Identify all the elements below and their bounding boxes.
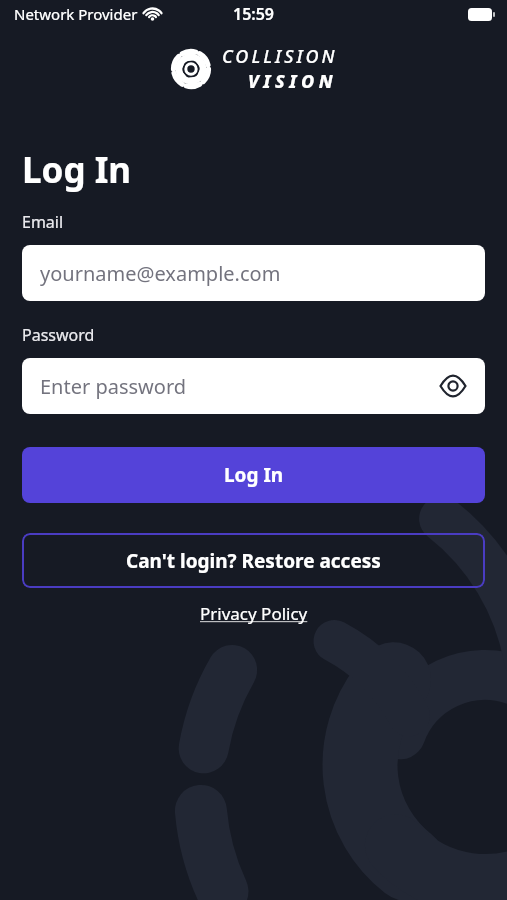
button[interactable]: Can't login? Restore access	[22, 533, 485, 588]
staticText: VISION	[248, 69, 338, 94]
button[interactable]: Privacy Policy	[200, 602, 308, 625]
staticText: yourname@example.com	[40, 260, 281, 287]
staticText: Password	[22, 324, 95, 346]
staticText: Network Provider	[14, 4, 138, 24]
button[interactable]: Log In	[22, 447, 485, 503]
button[interactable]: Enter password	[22, 358, 485, 414]
staticText: COLLISION	[222, 44, 338, 69]
staticText: 15:59	[233, 3, 275, 25]
staticText: Enter password	[40, 373, 187, 400]
staticText: Email	[22, 211, 64, 233]
staticText: Log In	[224, 462, 284, 488]
button[interactable]: yourname@example.com	[22, 245, 485, 301]
staticText: Can't login? Restore access	[126, 548, 381, 574]
staticText: Log In	[22, 146, 132, 194]
